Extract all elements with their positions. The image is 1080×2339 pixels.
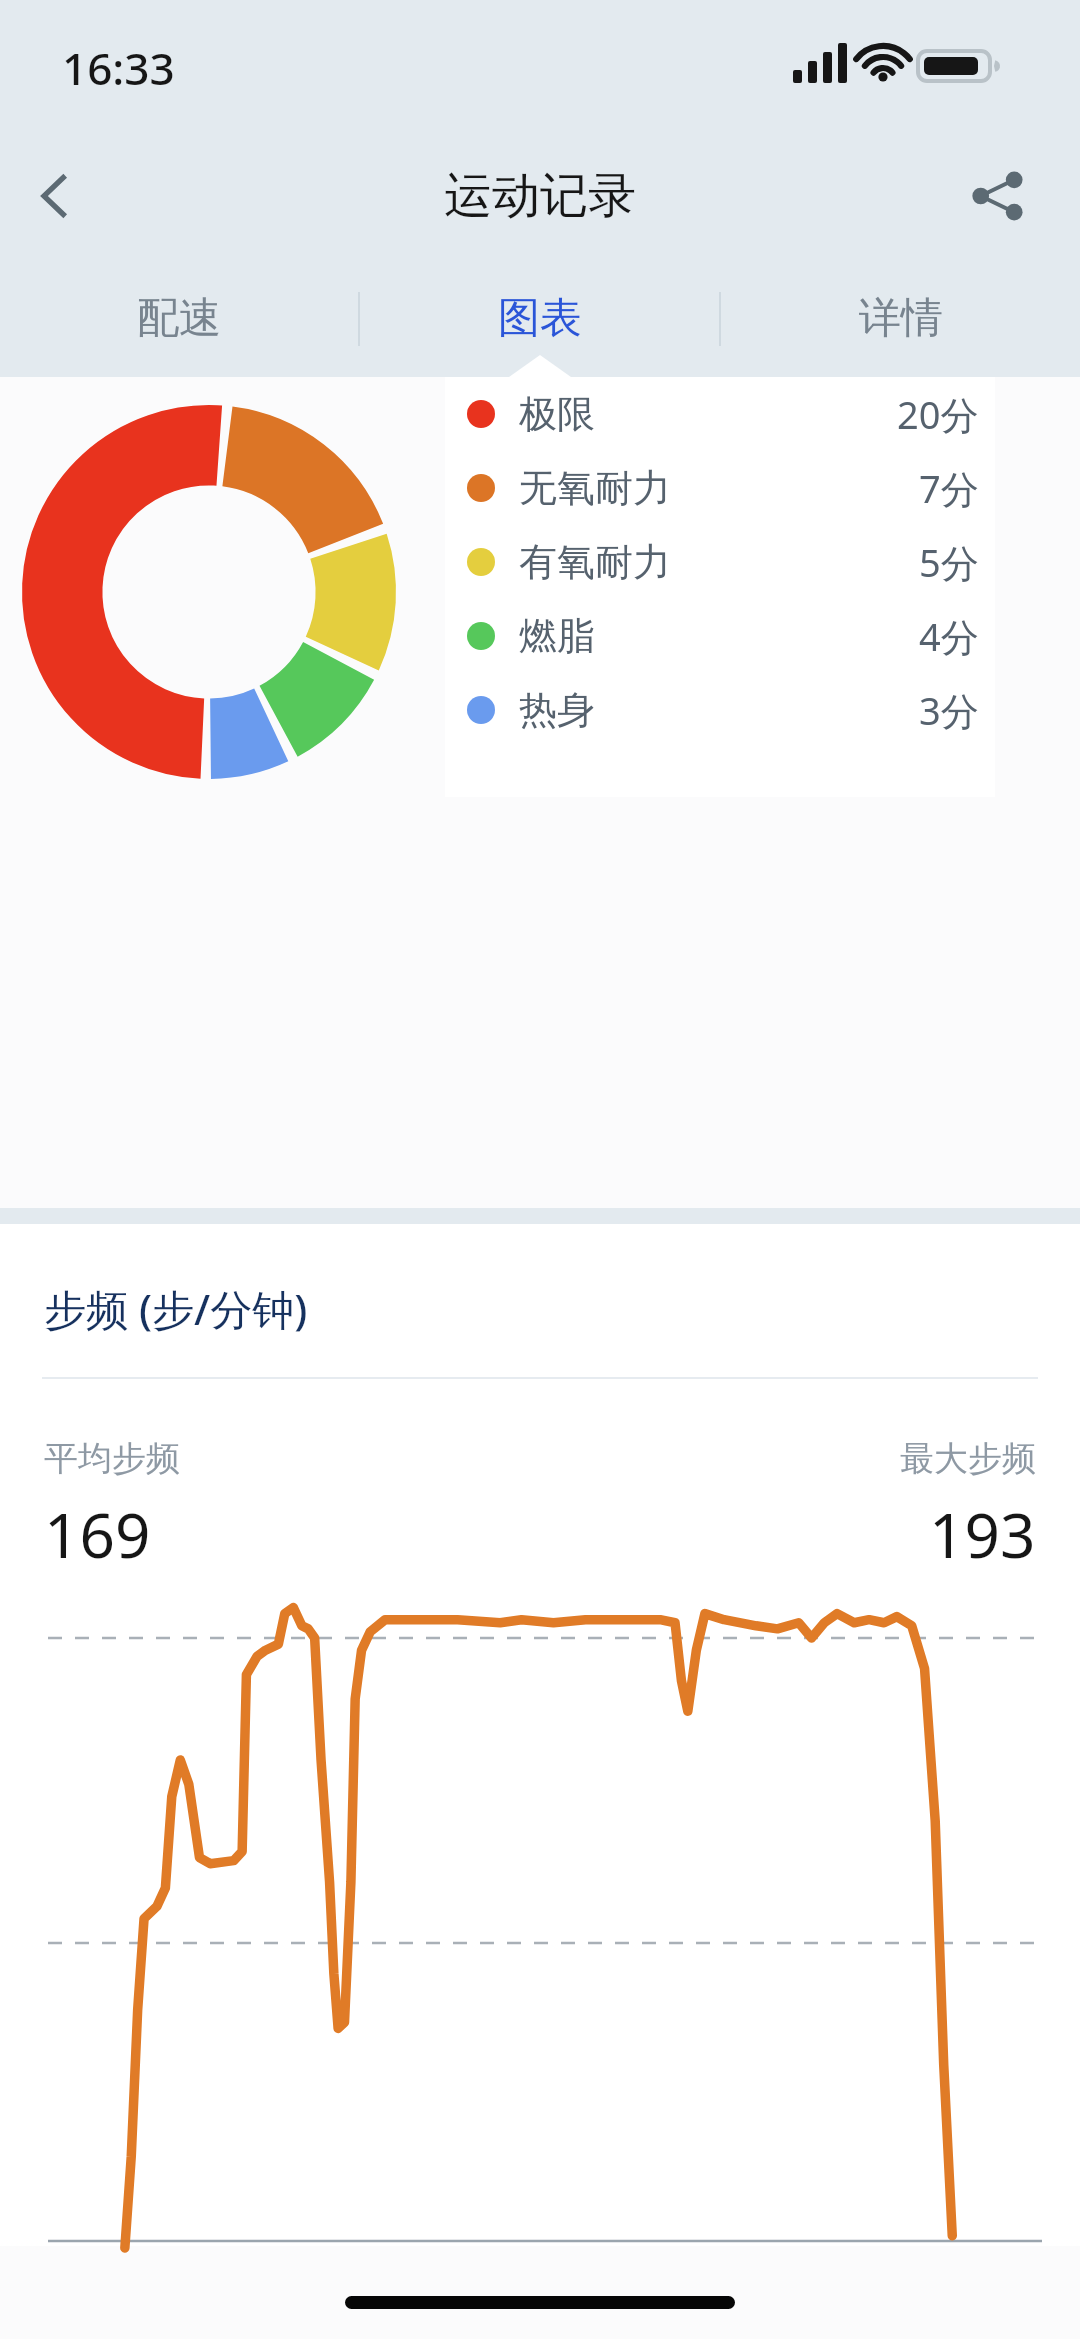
staticText: 无氧耐力 bbox=[519, 464, 671, 512]
button[interactable]: 配速 bbox=[0, 260, 358, 377]
staticText: 极限 bbox=[519, 390, 595, 438]
button[interactable]: Back bbox=[0, 141, 110, 251]
staticText: 配速 bbox=[137, 292, 221, 345]
button[interactable]: Share bbox=[944, 142, 1052, 250]
staticText: 16:33 bbox=[62, 38, 175, 98]
staticText: 步频 (步/分钟) bbox=[44, 1280, 308, 1337]
staticText: 平均步频 bbox=[44, 1437, 180, 1480]
staticText: 热身 bbox=[519, 686, 595, 734]
staticText: 169 bbox=[44, 1492, 151, 1576]
staticText: 3分 bbox=[919, 684, 979, 736]
staticText: 图表 bbox=[498, 292, 582, 345]
button[interactable]: 燃脂 bbox=[467, 599, 979, 673]
staticText: 4分 bbox=[919, 610, 979, 662]
staticText: 有氧耐力 bbox=[519, 538, 671, 586]
staticText: 最大步频 bbox=[900, 1437, 1036, 1480]
staticText: 5分 bbox=[919, 536, 979, 588]
button[interactable]: 详情 bbox=[721, 260, 1080, 377]
staticText: 7分 bbox=[919, 462, 979, 514]
staticText: 燃脂 bbox=[519, 612, 595, 660]
button[interactable]: 热身 bbox=[467, 673, 979, 747]
staticText: 运动记录 bbox=[444, 166, 636, 226]
button[interactable]: 无氧耐力 bbox=[467, 451, 979, 525]
staticText: 20分 bbox=[897, 388, 979, 440]
staticText: 详情 bbox=[859, 292, 943, 345]
staticText: 193 bbox=[929, 1492, 1036, 1576]
button[interactable]: 极限 bbox=[467, 377, 979, 451]
button[interactable]: 图表 bbox=[360, 260, 719, 377]
button[interactable]: 有氧耐力 bbox=[467, 525, 979, 599]
